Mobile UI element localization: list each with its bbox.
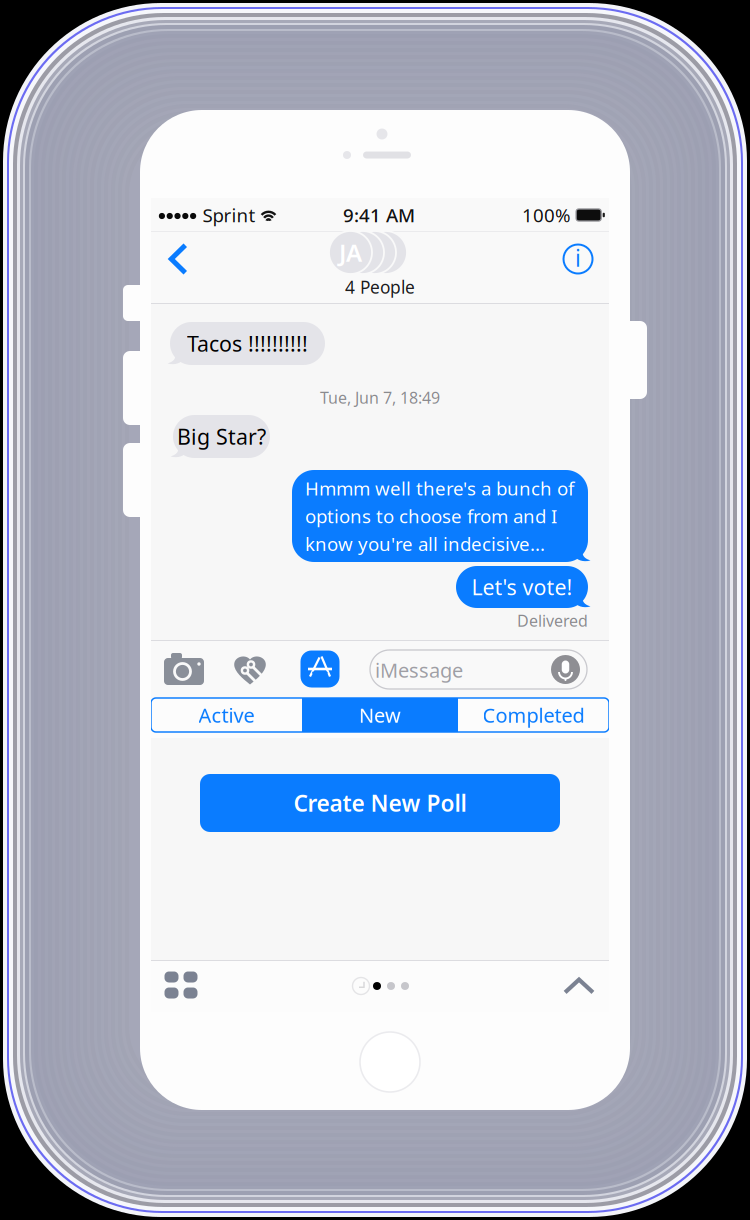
staticText: Delivered bbox=[517, 610, 588, 631]
button[interactable]: JA bbox=[329, 230, 431, 298]
button[interactable]: New bbox=[302, 698, 458, 732]
staticText: Completed bbox=[482, 702, 584, 728]
staticText: Let's vote! bbox=[471, 573, 572, 601]
staticText: i bbox=[575, 243, 581, 273]
staticText: know you're all indecisive... bbox=[305, 531, 545, 556]
staticText: iMessage bbox=[375, 657, 463, 683]
button[interactable]: Expand bbox=[563, 977, 595, 994]
button[interactable]: Back bbox=[168, 242, 187, 275]
button[interactable]: Digital Touch bbox=[233, 653, 267, 685]
button[interactable]: Active bbox=[151, 698, 302, 732]
staticText: options to choose from and I bbox=[305, 504, 557, 528]
button[interactable]: Completed bbox=[458, 698, 609, 732]
staticText: JA bbox=[339, 237, 362, 268]
staticText: Sprint bbox=[202, 203, 255, 227]
staticText: 9:41 AM bbox=[343, 203, 415, 227]
staticText: Active bbox=[198, 702, 254, 728]
staticText: Hmmm well there's a bunch of bbox=[305, 476, 574, 501]
staticText: Tacos !!!!!!!!!! bbox=[187, 329, 308, 358]
button[interactable]: App Store bbox=[300, 650, 339, 687]
button[interactable]: Apps bbox=[164, 971, 197, 998]
staticText: New bbox=[359, 702, 401, 728]
staticText: Tue, Jun 7, 18:49 bbox=[320, 387, 440, 408]
button[interactable]: Camera bbox=[163, 652, 205, 686]
staticText: 4 People bbox=[345, 275, 415, 298]
button[interactable]: Create New Poll bbox=[200, 774, 560, 832]
staticText: Big Star? bbox=[177, 422, 266, 451]
staticText: Create New Poll bbox=[293, 788, 466, 818]
staticText: 100% bbox=[522, 203, 571, 227]
button[interactable]: Details bbox=[562, 243, 593, 274]
